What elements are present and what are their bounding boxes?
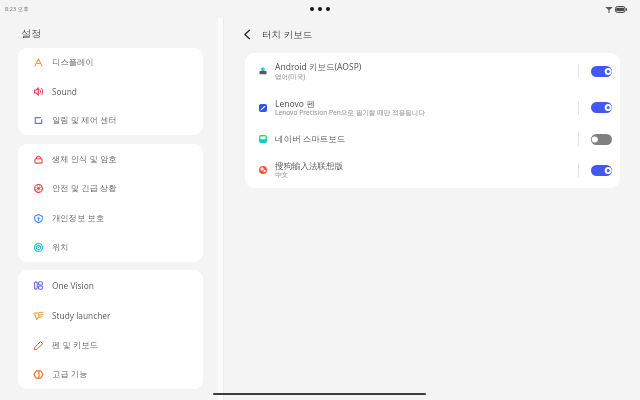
button[interactable]: 디스플레이 [18,48,203,77]
button[interactable]: Toggle on [591,102,612,113]
button[interactable]: Toggle on [591,165,612,176]
staticText: 中文 [275,171,289,179]
staticText: Study launcher [52,310,111,321]
staticText: 생체 인식 및 암호 [52,153,117,164]
staticText: Sound [52,86,77,97]
staticText: 펜 및 키보드 [52,339,98,350]
staticText: 개인정보 보호 [52,212,104,223]
button[interactable]: 개인정보 보호 [18,203,203,233]
staticText: 설정 [21,27,42,40]
button[interactable]: 생체 인식 및 암호 [18,144,203,174]
staticText: 네이버 스마트보드 [275,133,346,145]
button[interactable]: Lenovo 펜 [245,89,620,126]
staticText: 터치 키보드 [262,28,313,41]
staticText: 위치 [52,242,69,252]
button[interactable]: Toggle off [591,134,612,145]
button[interactable]: Back [237,23,257,45]
button[interactable]: Sound [18,77,203,106]
staticText: 디스플레이 [52,57,94,67]
button[interactable]: 搜狗输入法联想版 [245,152,620,188]
staticText: 안전 및 긴급 상황 [52,182,117,193]
staticText: Lenovo 펜 [275,98,315,110]
staticText: One Vision [52,280,94,291]
staticText: Android 키보드(AOSP) [275,61,362,73]
button[interactable]: 고급 기능 [18,360,203,389]
staticText: 고급 기능 [52,368,88,379]
staticText: 8:23 오후 [5,5,29,13]
button[interactable]: 알림 및 제어 센터 [18,106,203,135]
button[interactable]: 안전 및 긴급 상황 [18,174,203,203]
button[interactable]: 펜 및 키보드 [18,330,203,360]
button[interactable]: 위치 [18,233,203,262]
button[interactable]: Study launcher [18,300,203,330]
staticText: 알림 및 제어 센터 [52,114,117,125]
staticText: 搜狗输入法联想版 [275,161,343,172]
staticText: Lenovo Precision Pen으로 필기할 때만 적용됩니다 [275,108,426,117]
button[interactable]: One Vision [18,270,203,300]
staticText: 영어(미국) [275,72,306,81]
button[interactable]: Toggle on [591,66,612,77]
button[interactable]: Android 키보드(AOSP) [245,53,620,89]
button[interactable]: 네이버 스마트보드 [245,126,620,152]
